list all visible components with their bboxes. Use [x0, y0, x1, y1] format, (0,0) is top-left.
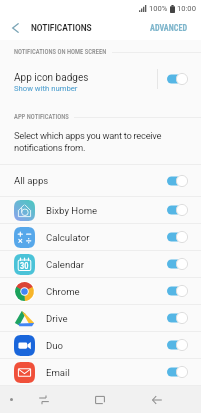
- staticText: 100%: [149, 4, 168, 13]
- staticText: ADVANCED: [150, 23, 188, 33]
- staticText: Calculator: [46, 232, 90, 243]
- staticText: Show with number: [14, 84, 78, 93]
- button[interactable]: Email: [0, 359, 201, 385]
- staticText: App icon badges: [14, 72, 89, 84]
- staticText: Duo: [46, 340, 64, 351]
- staticText: 30: [20, 261, 29, 271]
- staticText: Bixby Home: [46, 205, 98, 216]
- button[interactable]: Home: [87, 387, 113, 413]
- button[interactable]: ADVANCED: [140, 16, 201, 40]
- staticText: Drive: [46, 313, 68, 324]
- button[interactable]: Bixby Home: [0, 197, 201, 223]
- staticText: Chrome: [46, 286, 80, 297]
- button[interactable]: Recent apps: [31, 387, 57, 413]
- button[interactable]: 30: [0, 251, 201, 277]
- staticText: 10:00: [177, 4, 196, 13]
- button[interactable]: Duo: [0, 332, 201, 358]
- staticText: NOTIFICATIONS ON HOME SCREEN: [14, 48, 107, 56]
- staticText: NOTIFICATIONS: [31, 23, 92, 33]
- button[interactable]: Drive: [0, 305, 201, 331]
- staticText: Email: [46, 367, 70, 378]
- button[interactable]: Calculator: [0, 224, 201, 250]
- button[interactable]: Back: [144, 387, 170, 413]
- staticText: APP NOTIFICATIONS: [14, 113, 69, 121]
- button[interactable]: Chrome: [0, 278, 201, 304]
- staticText: All apps: [14, 175, 49, 186]
- staticText: Select which apps you want to receive no…: [14, 130, 162, 154]
- button[interactable]: Navigate up: [0, 16, 31, 40]
- button[interactable]: All apps: [0, 165, 201, 196]
- staticText: Calendar: [46, 259, 85, 270]
- button[interactable]: App icon badges: [0, 56, 201, 102]
